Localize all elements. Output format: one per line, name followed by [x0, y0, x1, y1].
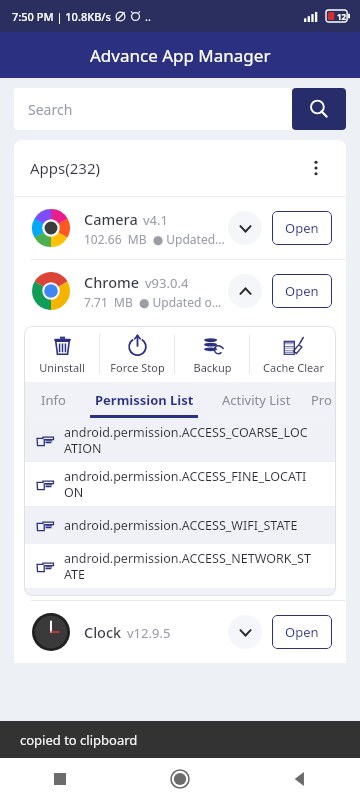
staticText: v4.1 — [143, 211, 168, 229]
staticText: 102.66 MB ● Updated... — [84, 231, 225, 247]
staticText: Activity List — [222, 391, 291, 409]
staticText: 7.71 MB ● Updated o... — [84, 294, 222, 310]
staticText: Advance App Manager — [90, 44, 271, 67]
staticText: Open — [285, 219, 319, 237]
staticText: Permission List — [95, 391, 194, 409]
staticText: android.permission.ACCESS_FINE_LOCATI ON — [64, 468, 307, 500]
button[interactable]: Camera — [14, 197, 346, 259]
staticText: android.permission.ACCESS_COARSE_LOC ATI… — [64, 424, 308, 456]
staticText: Open — [285, 623, 319, 641]
staticText: Search — [28, 100, 73, 119]
staticText: Info — [41, 391, 66, 409]
button[interactable]: Search — [292, 88, 346, 130]
staticText: Camera — [84, 209, 138, 229]
button[interactable]: android.permission.ACCESS_NETWORK_ST ATE — [24, 544, 336, 588]
button[interactable]: Expand — [228, 211, 262, 245]
staticText: Apps(232) — [30, 158, 100, 178]
button[interactable]: Chrome — [14, 260, 346, 322]
button[interactable]: Clock — [14, 601, 346, 663]
staticText: 7:50 PM | 10.8KB/s — [12, 9, 111, 24]
button[interactable]: android.permission.ACCESS_FINE_LOCATI ON — [24, 462, 336, 506]
staticText: copied to clipboard — [20, 731, 138, 749]
staticText: .. — [145, 9, 151, 24]
button[interactable]: Expand — [228, 615, 262, 649]
button[interactable]: Uninstall — [24, 326, 99, 382]
staticText: Backup — [193, 360, 232, 375]
staticText: Uninstall — [39, 360, 85, 375]
button[interactable]: Back — [280, 759, 320, 799]
button[interactable]: android.permission.ACCESS_COARSE_LOC ATI… — [24, 418, 336, 462]
button[interactable]: Home — [160, 759, 200, 799]
button[interactable]: Permission List — [82, 382, 206, 418]
staticText: Cache Clear — [263, 360, 324, 375]
staticText: 12 — [337, 11, 347, 22]
button[interactable]: android.permission.ACCESS_WIFI_STATE — [24, 506, 336, 544]
button[interactable]: Recents — [40, 759, 80, 799]
button[interactable]: Collapse — [228, 274, 262, 308]
button[interactable]: Pro — [306, 382, 336, 418]
button[interactable]: Search — [14, 88, 292, 130]
button[interactable]: Backup — [175, 326, 249, 382]
staticText: android.permission.ACCESS_NETWORK_ST ATE — [64, 550, 311, 582]
button[interactable]: Open — [272, 211, 332, 245]
staticText: Pro — [311, 391, 332, 409]
staticText: v93.0.4 — [145, 274, 189, 292]
button[interactable]: Open — [272, 274, 332, 308]
staticText: Chrome — [84, 272, 140, 292]
button[interactable]: Force Stop — [100, 326, 174, 382]
button[interactable]: More options — [302, 154, 330, 182]
staticText: Force Stop — [110, 360, 165, 375]
button[interactable]: Open — [272, 615, 332, 649]
staticText: Open — [285, 282, 319, 300]
staticText: v12.9.5 — [127, 624, 171, 642]
staticText: Clock — [84, 622, 122, 642]
button[interactable]: Apps(232) — [14, 140, 346, 196]
button[interactable]: Info — [24, 382, 82, 418]
button[interactable]: Activity List — [206, 382, 306, 418]
button[interactable]: Cache Clear — [250, 326, 336, 382]
staticText: android.permission.ACCESS_WIFI_STATE — [64, 517, 298, 534]
